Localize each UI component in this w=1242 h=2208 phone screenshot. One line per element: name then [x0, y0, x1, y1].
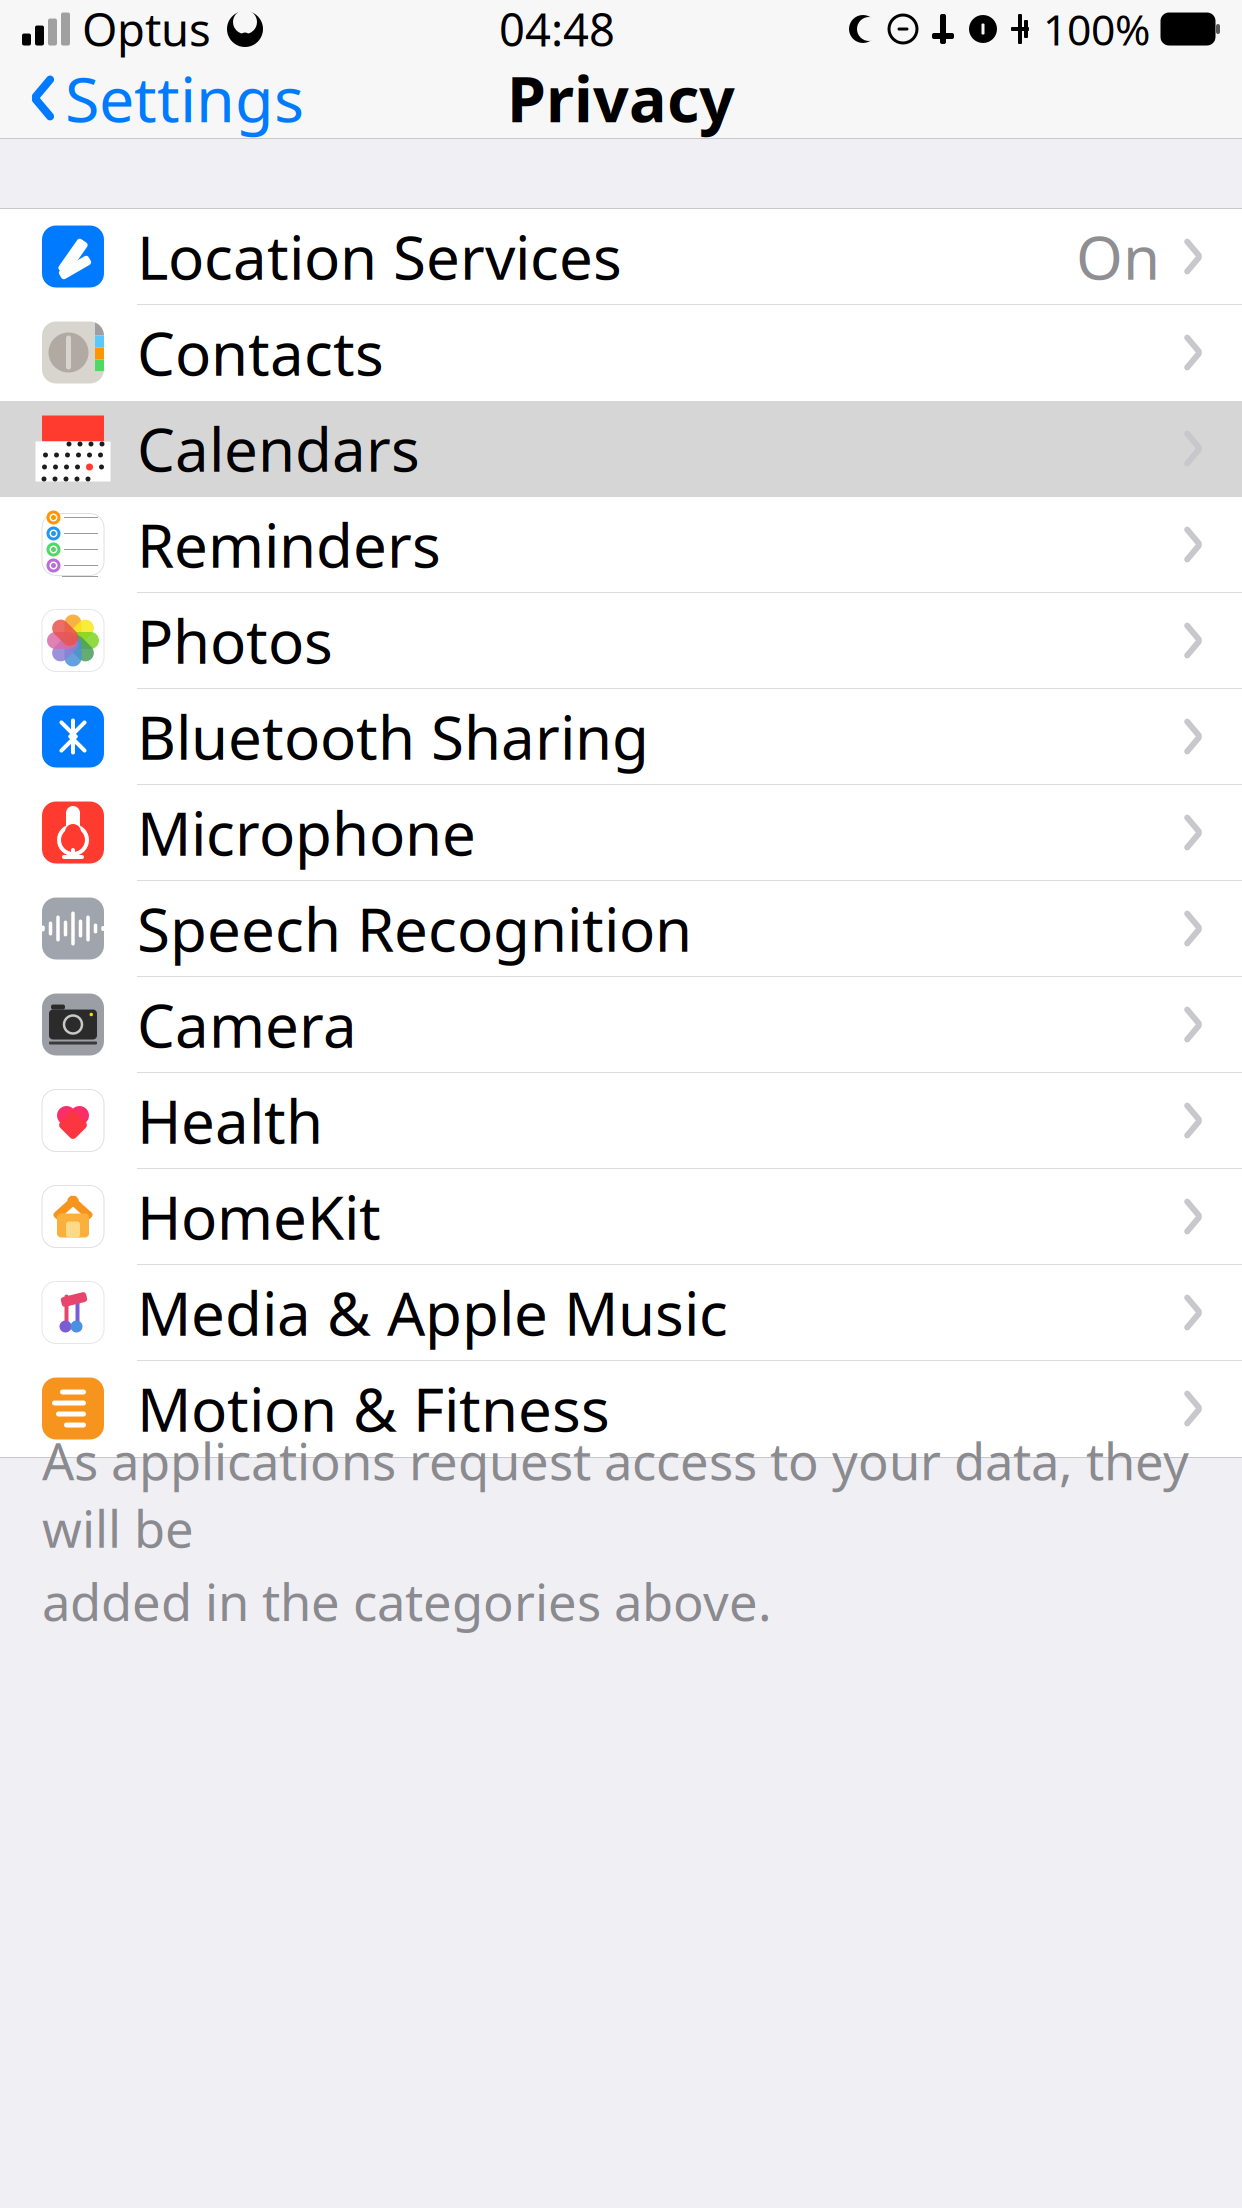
staticText: On [1076, 217, 1160, 296]
button[interactable]: Health [0, 1073, 1242, 1169]
button[interactable]: Camera [0, 977, 1242, 1073]
staticText: HomeKit [137, 1177, 381, 1256]
staticText: Photos [137, 601, 333, 680]
button[interactable]: Contacts [0, 305, 1242, 401]
button[interactable]: Reminders [0, 497, 1242, 593]
staticText: Optus [82, 0, 211, 59]
button[interactable]: HomeKit [0, 1169, 1242, 1265]
staticText: added in the categories above. [42, 1568, 772, 1635]
button[interactable]: Motion & Fitness [0, 1361, 1242, 1457]
staticText: Bluetooth Sharing [137, 697, 649, 776]
staticText: Contacts [137, 313, 384, 392]
button[interactable]: Location Services [0, 209, 1242, 305]
staticText: Motion & Fitness [137, 1369, 610, 1448]
staticText: Reminders [137, 505, 441, 584]
button[interactable]: Settings [0, 42, 304, 154]
staticText: Privacy [507, 56, 735, 140]
staticText: Camera [137, 985, 357, 1064]
staticText: 04:48 [499, 0, 615, 59]
staticText: Media & Apple Music [137, 1273, 728, 1352]
button[interactable]: Photos [0, 593, 1242, 689]
staticText: Location Services [137, 217, 622, 296]
button[interactable]: Calendars [0, 401, 1242, 497]
staticText: 100% [1043, 1, 1150, 57]
staticText: Speech Recognition [137, 889, 692, 968]
button[interactable]: Media & Apple Music [0, 1265, 1242, 1361]
staticText: Settings [65, 56, 304, 140]
staticText: As applications request access to your d… [42, 1427, 1189, 1562]
button[interactable]: Microphone [0, 785, 1242, 881]
button[interactable]: Bluetooth Sharing [0, 689, 1242, 785]
staticText: Calendars [137, 409, 420, 488]
staticText: Health [137, 1081, 323, 1160]
button[interactable]: Speech Recognition [0, 881, 1242, 977]
staticText: Microphone [137, 793, 476, 872]
